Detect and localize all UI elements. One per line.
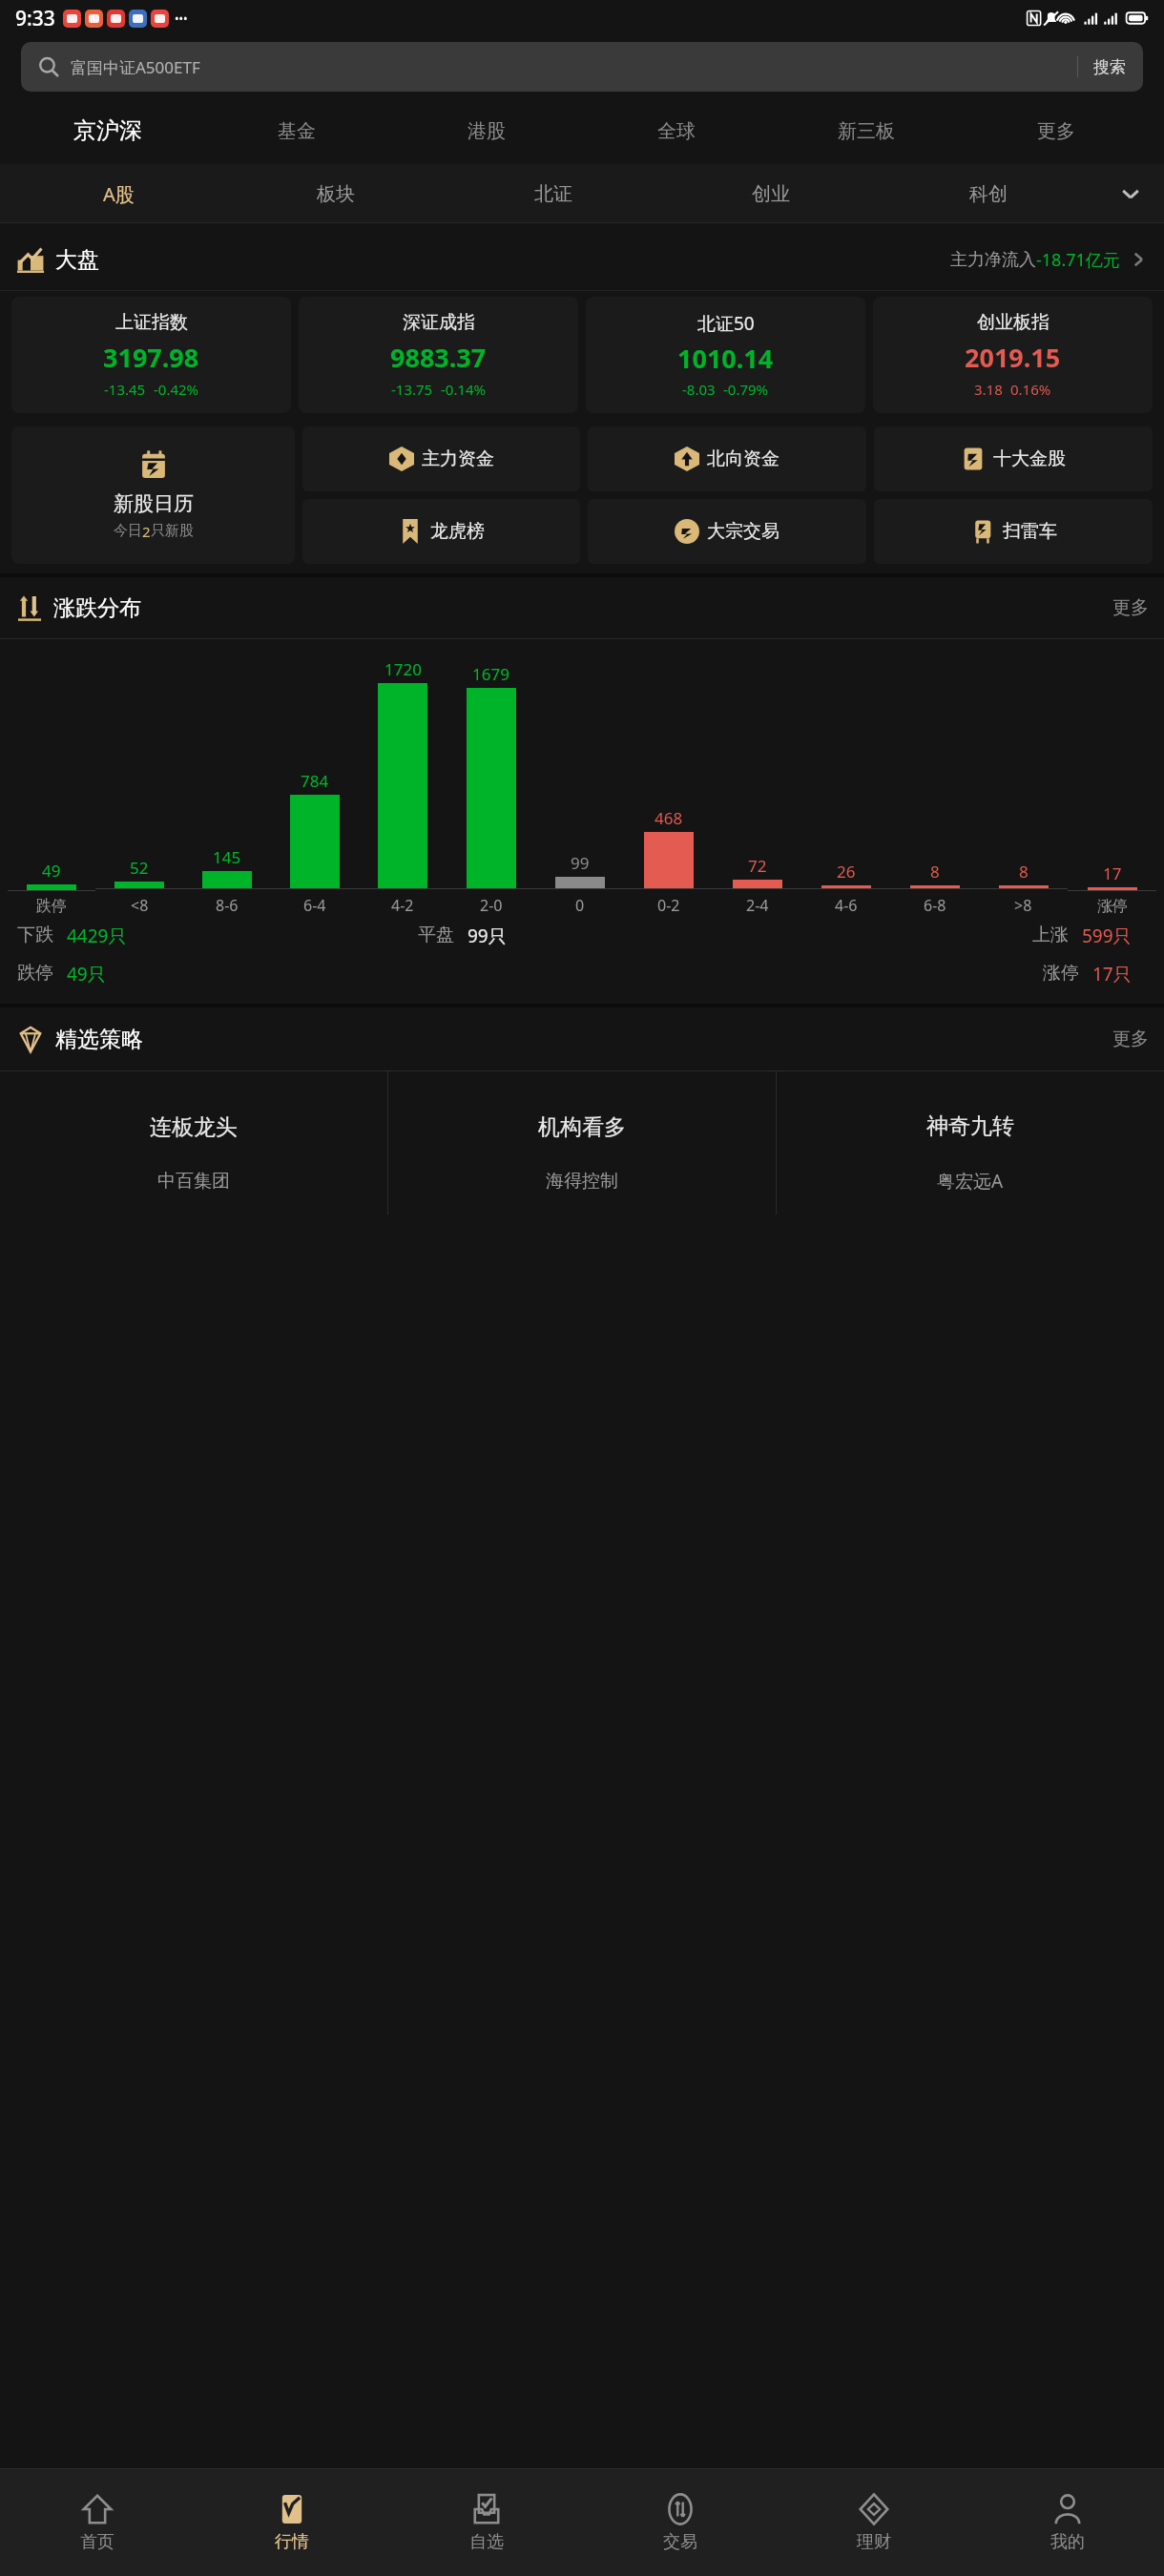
staticText: -0.14%	[441, 380, 487, 399]
staticText: 今日	[114, 522, 142, 540]
staticText: 1679	[472, 663, 509, 685]
staticText: 北证	[534, 182, 572, 206]
staticText: >8	[1014, 895, 1032, 916]
button[interactable]: 板块	[227, 164, 445, 223]
staticText: 3197.98	[103, 340, 199, 375]
staticText: 连板龙头	[150, 1113, 238, 1141]
button[interactable]: 北向资金	[588, 426, 866, 491]
staticText: 4429只	[67, 924, 127, 948]
staticText: 2019.15	[965, 340, 1061, 375]
staticText: 跌停	[36, 897, 67, 916]
staticText: 深证成指	[403, 311, 475, 334]
button[interactable]: 涨跌分布	[15, 577, 1149, 638]
staticText: 9:33	[15, 5, 55, 32]
staticText: 涨停	[1097, 897, 1128, 916]
staticText: 8	[1019, 861, 1029, 883]
staticText: -0.79%	[723, 380, 769, 399]
staticText: 2	[142, 522, 151, 541]
button[interactable]: 北证	[445, 164, 662, 223]
staticText: 扫雷车	[1003, 520, 1057, 543]
staticText: 2-4	[746, 895, 769, 916]
staticText: 行情	[275, 2531, 309, 2553]
button[interactable]: 创业板指	[873, 297, 1153, 413]
button[interactable]: 神奇九转	[777, 1071, 1164, 1215]
staticText: 下跌	[17, 924, 53, 946]
staticText: 新股日历	[114, 491, 194, 516]
staticText: 99	[571, 852, 590, 874]
staticText: 交易	[663, 2531, 697, 2553]
staticText: 8-6	[216, 895, 239, 916]
staticText: 49只	[67, 962, 106, 987]
button[interactable]: 深证成指	[299, 297, 578, 413]
staticText: 0	[575, 895, 585, 916]
button[interactable]: 京沪深	[13, 97, 202, 164]
staticText: 3.18	[974, 380, 1003, 399]
button[interactable]: 行情	[195, 2469, 389, 2576]
staticText: -18.71亿元	[1036, 248, 1120, 272]
staticText: 8	[930, 861, 940, 883]
button[interactable]: 十大金股	[874, 426, 1153, 491]
button[interactable]: 富国中证A500ETF	[21, 42, 1143, 92]
staticText: 主力净流入	[950, 249, 1036, 271]
button[interactable]: 更多	[961, 97, 1151, 164]
button[interactable]: 基金	[202, 97, 391, 164]
button[interactable]: 创业	[662, 164, 880, 223]
staticText: 基金	[278, 119, 316, 143]
button[interactable]: 理财	[777, 2469, 970, 2576]
staticText: 599只	[1082, 924, 1132, 948]
staticText: A股	[103, 181, 135, 207]
button[interactable]: 自选	[389, 2469, 583, 2576]
button[interactable]: 展开更多分类	[1097, 164, 1164, 223]
button[interactable]: 北证50	[586, 297, 865, 413]
button[interactable]: 科创	[880, 164, 1097, 223]
staticText: 港股	[468, 119, 506, 143]
staticText: •••	[175, 10, 188, 26]
staticText: 784	[301, 770, 329, 792]
staticText: 更多	[1112, 1028, 1149, 1050]
button[interactable]: 龙虎榜	[302, 499, 580, 564]
staticText: 富国中证A500ETF	[71, 56, 200, 78]
staticText: 1720	[385, 658, 422, 680]
button[interactable]: 精选策略	[15, 1008, 1149, 1070]
button[interactable]: 大盘	[15, 229, 1149, 290]
staticText: 更多	[1112, 596, 1149, 619]
staticText: 海得控制	[546, 1170, 618, 1193]
staticText: 上涨	[1032, 924, 1069, 946]
staticText: 145	[213, 846, 241, 868]
button[interactable]: A股	[10, 164, 227, 223]
staticText: 主力资金	[422, 447, 494, 470]
button[interactable]: 交易	[583, 2469, 777, 2576]
staticText: -8.03	[682, 380, 716, 399]
button[interactable]: 连板龙头	[0, 1071, 387, 1215]
button[interactable]: 新三板	[771, 97, 961, 164]
staticText: 机构看多	[538, 1113, 626, 1141]
staticText: 0-2	[657, 895, 680, 916]
staticText: 4-6	[835, 895, 858, 916]
staticText: 搜索	[1093, 57, 1126, 77]
button[interactable]: 首页	[0, 2469, 195, 2576]
staticText: 468	[655, 807, 683, 829]
staticText: 大宗交易	[707, 520, 779, 543]
staticText: 京沪深	[73, 116, 142, 145]
staticText: 2-0	[480, 895, 503, 916]
staticText: 精选策略	[55, 1026, 143, 1053]
button[interactable]: 主力资金	[302, 426, 580, 491]
staticText: 9883.37	[390, 340, 487, 375]
staticText: 龙虎榜	[430, 520, 485, 543]
button[interactable]: 全球	[581, 97, 771, 164]
staticText: 粤宏远A	[937, 1169, 1004, 1194]
staticText: <8	[131, 895, 149, 916]
button[interactable]: 扫雷车	[874, 499, 1153, 564]
button[interactable]: 机构看多	[388, 1071, 776, 1215]
button[interactable]: 大宗交易	[588, 499, 866, 564]
staticText: 涨跌分布	[53, 594, 141, 622]
staticText: 52	[130, 857, 149, 879]
button[interactable]: 港股	[391, 97, 581, 164]
button[interactable]: 我的	[970, 2469, 1164, 2576]
button[interactable]: 新股日历	[11, 426, 295, 564]
staticText: 6-8	[924, 895, 946, 916]
staticText: 平盘	[418, 924, 454, 946]
staticText: 十大金股	[993, 447, 1066, 470]
staticText: -0.42%	[154, 380, 199, 399]
button[interactable]: 上证指数	[11, 297, 291, 413]
